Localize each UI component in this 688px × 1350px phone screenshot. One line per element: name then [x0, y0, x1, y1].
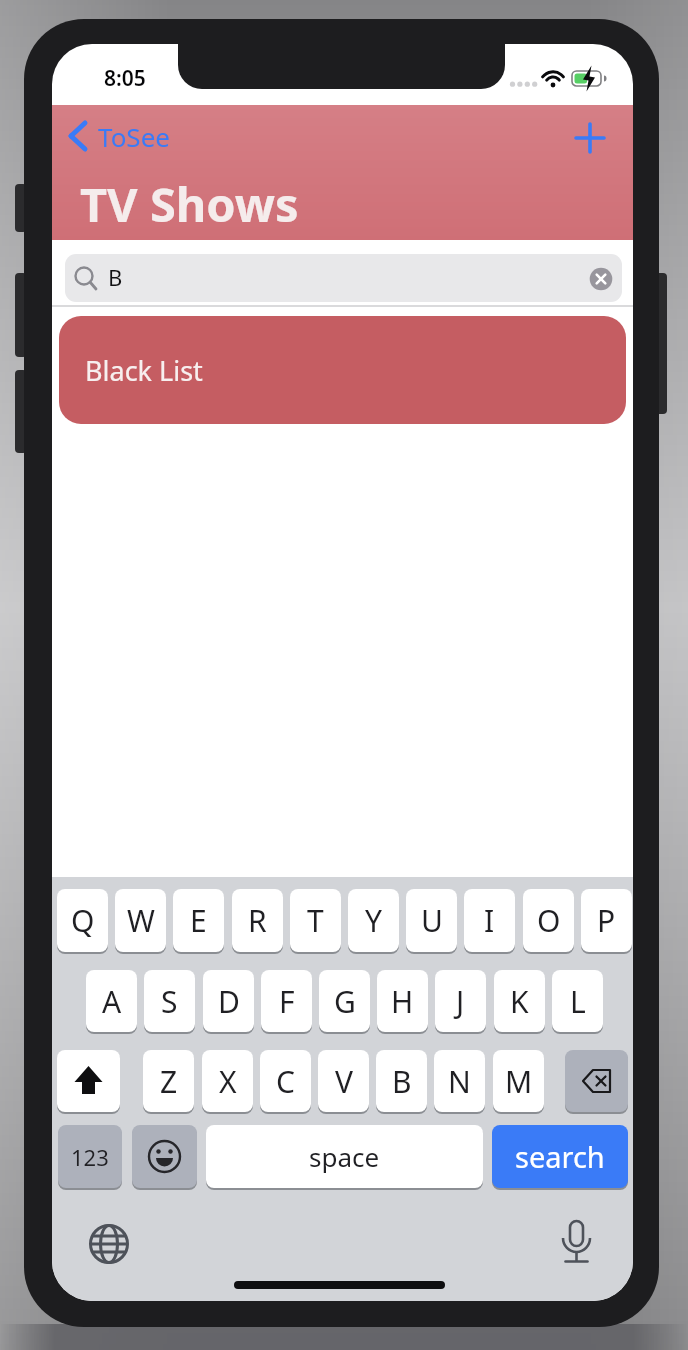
button[interactable]: M	[493, 1050, 544, 1112]
button[interactable]	[570, 118, 610, 158]
button[interactable]: ToSee	[62, 119, 212, 153]
button[interactable]: H	[377, 970, 428, 1032]
staticText: P	[597, 900, 616, 941]
button[interactable]: F	[261, 970, 312, 1032]
staticText: S	[161, 981, 178, 1022]
staticText: search	[515, 1137, 605, 1176]
button[interactable]: W	[115, 889, 166, 952]
staticText: Q	[71, 900, 95, 941]
button[interactable]: T	[290, 889, 341, 952]
staticText: X	[219, 1061, 237, 1102]
button[interactable]	[82, 1217, 136, 1271]
staticText: H	[391, 981, 414, 1022]
button[interactable]: Z	[143, 1050, 194, 1112]
staticText: R	[248, 900, 267, 941]
staticText: 123	[71, 1142, 109, 1172]
button[interactable]: B	[376, 1050, 427, 1112]
button[interactable]: Black List	[59, 316, 626, 424]
button[interactable]: A	[86, 970, 137, 1032]
staticText: L	[570, 981, 586, 1022]
staticText: O	[537, 900, 561, 941]
button[interactable]	[565, 1050, 628, 1112]
button[interactable]: X	[202, 1050, 253, 1112]
button[interactable]: Y	[348, 889, 399, 952]
button[interactable]: Q	[57, 889, 108, 952]
staticText: U	[421, 900, 443, 941]
button[interactable]	[550, 1214, 604, 1274]
staticText: G	[334, 981, 356, 1022]
button[interactable]: K	[494, 970, 545, 1032]
staticText: Black List	[85, 352, 203, 389]
button[interactable]: J	[435, 970, 486, 1032]
staticText: D	[218, 981, 240, 1022]
staticText: Y	[365, 900, 382, 941]
button[interactable]: L	[552, 970, 603, 1032]
staticText: space	[309, 1139, 380, 1174]
button[interactable]	[132, 1125, 197, 1188]
button[interactable]: space	[206, 1125, 483, 1188]
staticText: N	[448, 1061, 471, 1102]
button[interactable]: S	[144, 970, 195, 1032]
staticText: V	[335, 1061, 353, 1102]
staticText: C	[276, 1061, 295, 1102]
button[interactable]: I	[464, 889, 515, 952]
staticText: TV Shows	[80, 172, 299, 232]
staticText: B	[392, 1061, 412, 1102]
button[interactable]: R	[232, 889, 283, 952]
button[interactable]: P	[581, 889, 632, 952]
button[interactable]: E	[173, 889, 224, 952]
staticText: W	[127, 900, 155, 941]
button[interactable]: V	[318, 1050, 369, 1112]
staticText: F	[279, 981, 295, 1022]
staticText: T	[307, 900, 324, 941]
staticText: J	[456, 981, 465, 1022]
button[interactable]: D	[203, 970, 254, 1032]
staticText: ToSee	[98, 119, 170, 153]
staticText: Z	[160, 1061, 178, 1102]
button[interactable]: B	[65, 254, 622, 302]
button[interactable]: G	[319, 970, 370, 1032]
staticText: 8:05	[104, 64, 146, 92]
button[interactable]: N	[434, 1050, 485, 1112]
staticText: K	[510, 981, 529, 1022]
button[interactable]: 123	[58, 1125, 122, 1188]
button[interactable]: U	[406, 889, 457, 952]
staticText: A	[102, 981, 122, 1022]
button[interactable]: C	[260, 1050, 311, 1112]
staticText: M	[505, 1061, 533, 1102]
staticText: I	[484, 900, 495, 941]
button[interactable]: O	[523, 889, 574, 952]
staticText: E	[190, 900, 207, 941]
button[interactable]: search	[492, 1125, 628, 1188]
button[interactable]	[57, 1050, 120, 1112]
staticText: B	[108, 262, 123, 292]
